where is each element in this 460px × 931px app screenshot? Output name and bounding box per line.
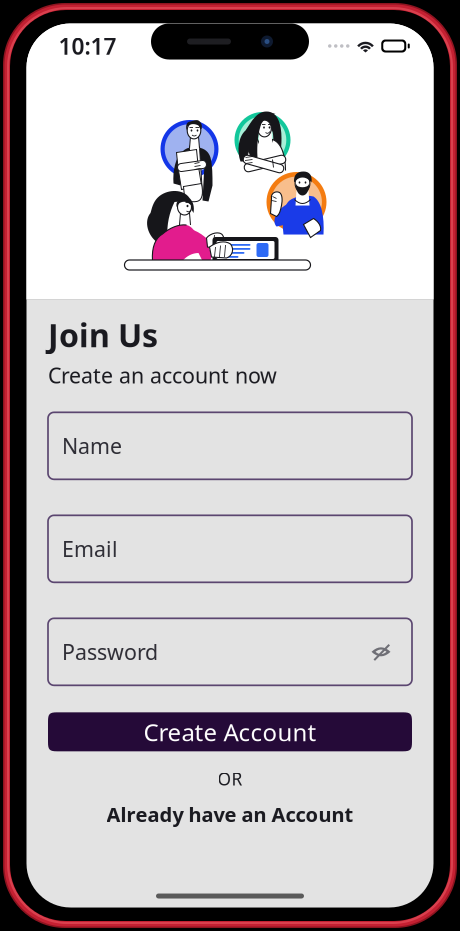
- staticText: Email: [62, 535, 118, 563]
- button[interactable]: Name: [48, 412, 412, 479]
- staticText: Already have an Account: [106, 801, 353, 828]
- button[interactable]: Password: [48, 618, 412, 685]
- staticText: 10:17: [58, 31, 116, 61]
- button[interactable]: Create Account: [48, 712, 412, 751]
- staticText: Password: [62, 638, 158, 666]
- staticText: OR: [217, 767, 242, 790]
- button[interactable]: Already have an Account: [48, 803, 412, 825]
- button[interactable]: Email: [48, 515, 412, 582]
- staticText: Create an account now: [48, 361, 277, 389]
- staticText: Name: [62, 432, 122, 460]
- staticText: Create Account: [143, 716, 316, 748]
- staticText: Join Us: [48, 313, 158, 356]
